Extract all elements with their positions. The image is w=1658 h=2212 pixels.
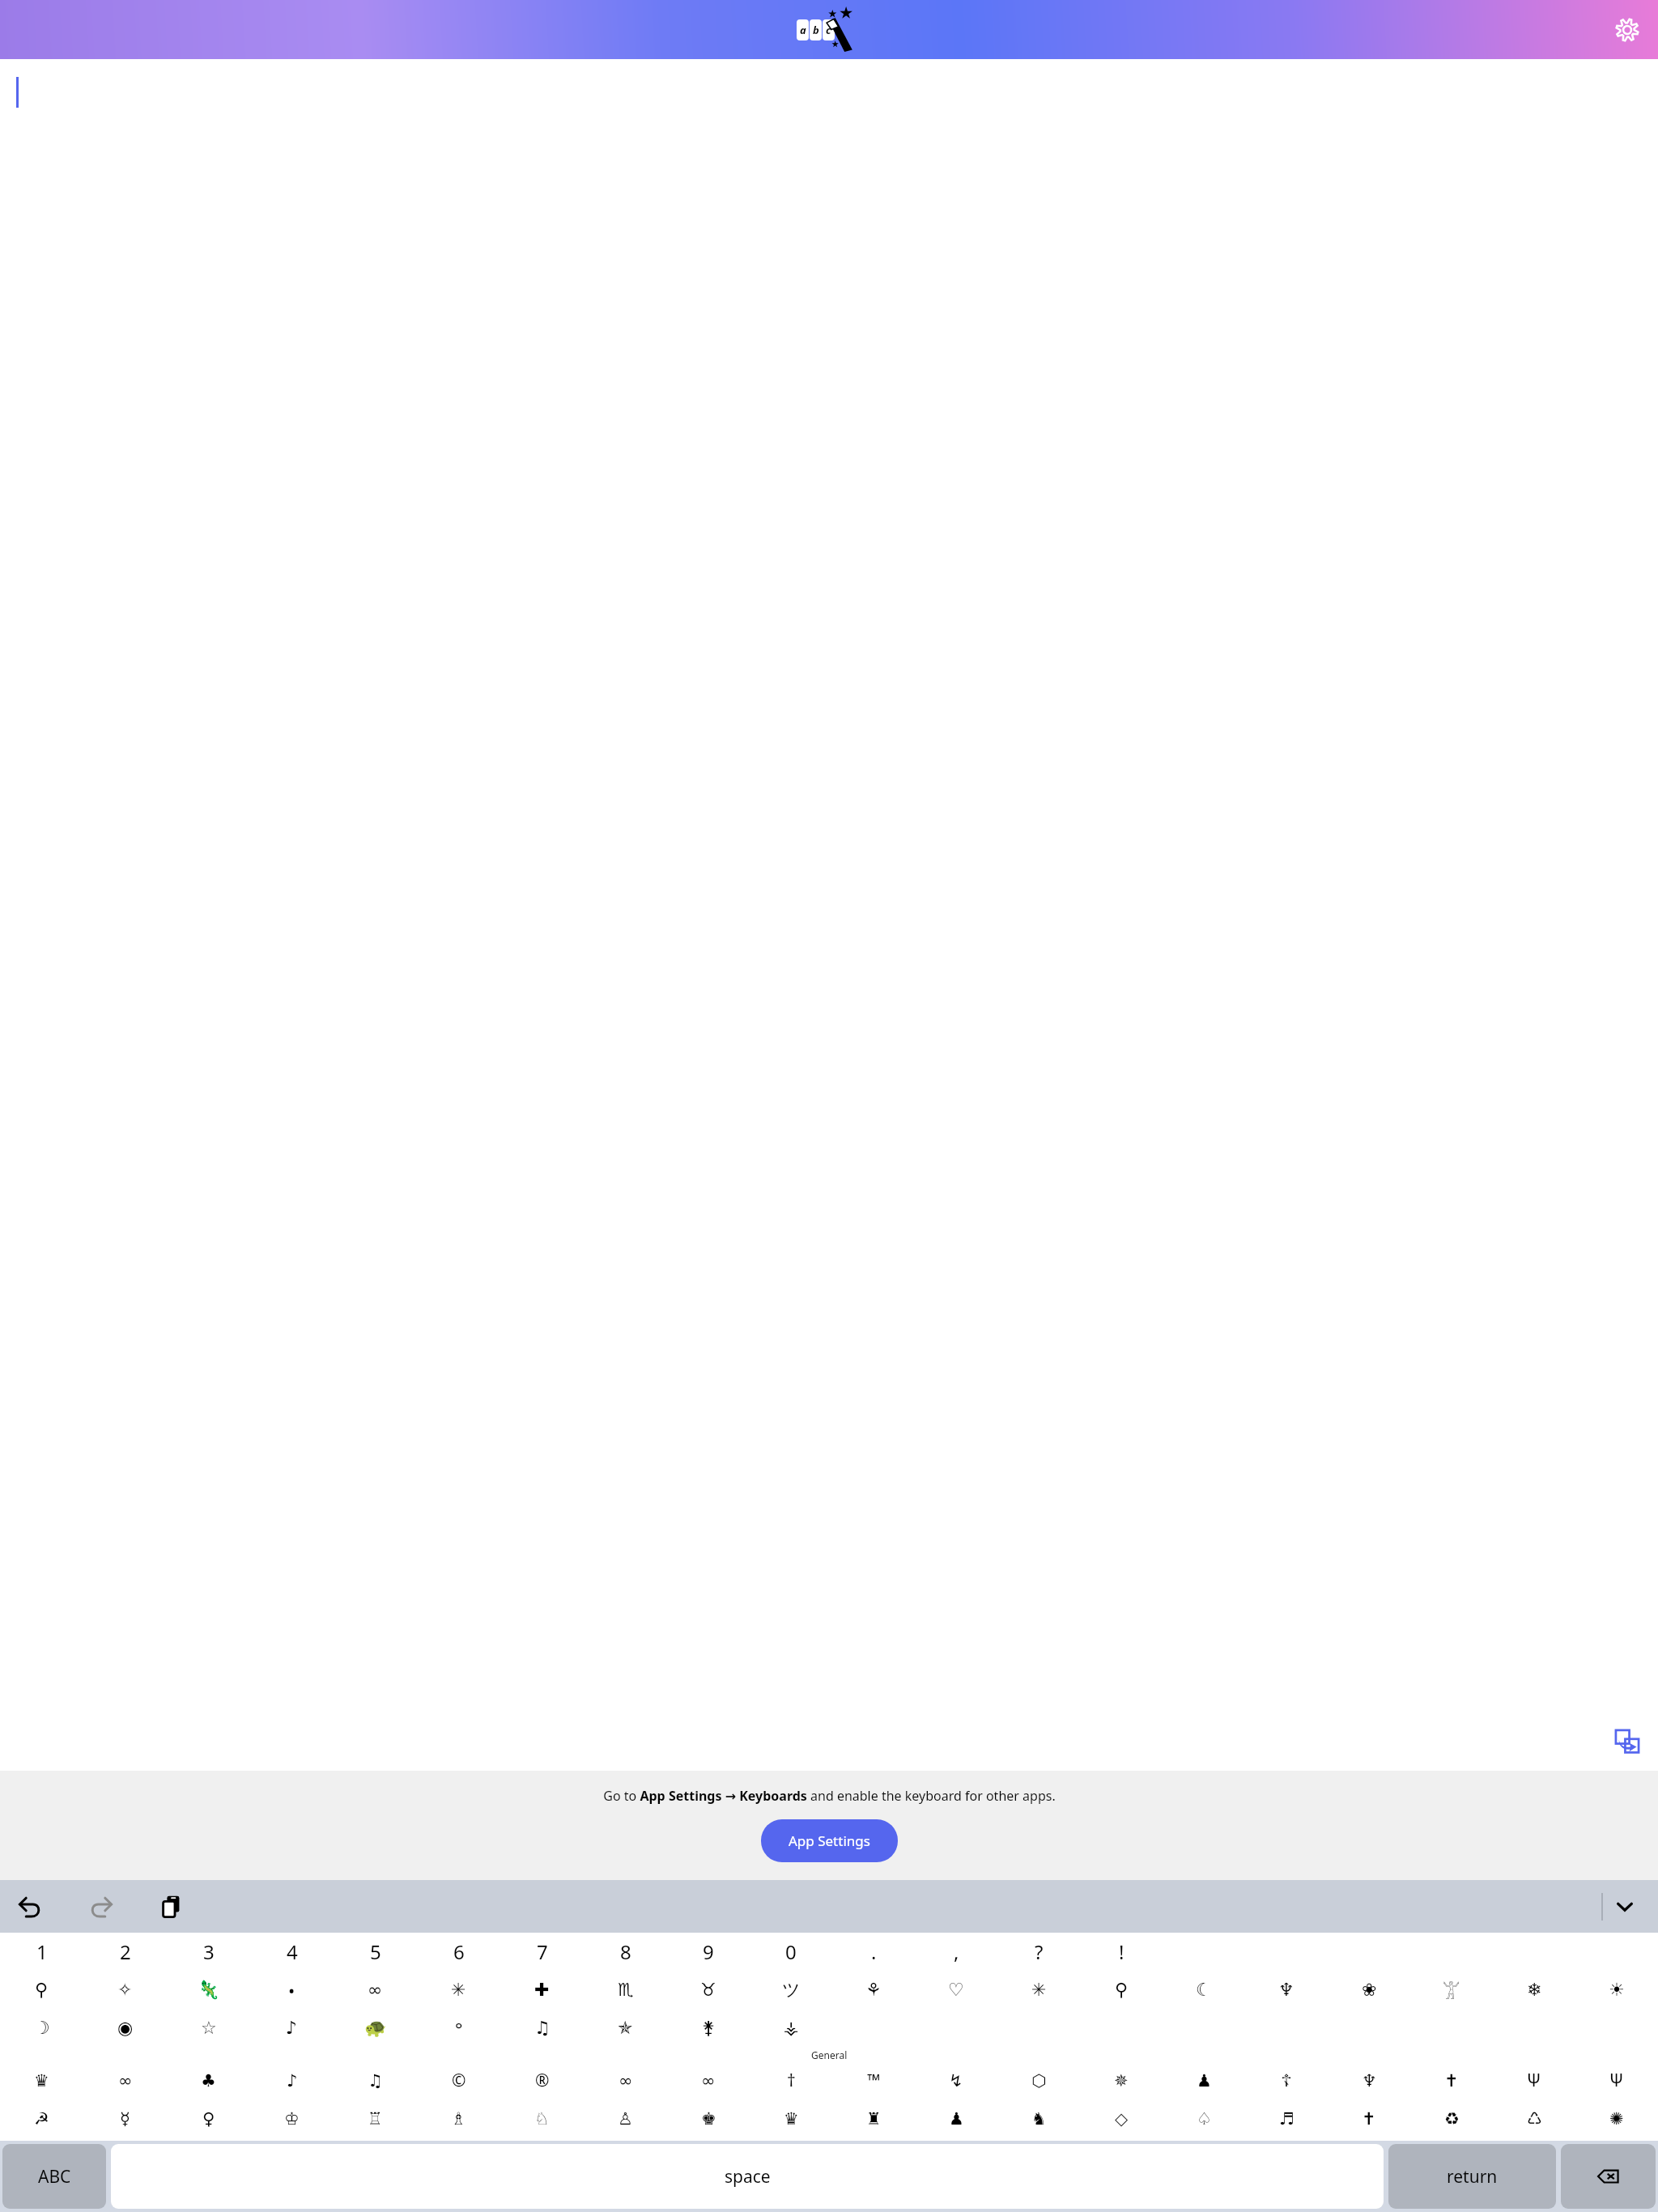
button[interactable]: return	[1388, 2144, 1556, 2209]
button[interactable]: 6	[417, 1933, 500, 1971]
button[interactable]: 🐢	[334, 2009, 417, 2047]
button[interactable]: 0	[750, 1933, 832, 1971]
button[interactable]: ✺	[1575, 2099, 1658, 2138]
button[interactable]: 1	[0, 1933, 83, 1971]
button[interactable]: ♛	[750, 2099, 832, 2138]
button[interactable]: ♡	[915, 1971, 997, 2009]
button[interactable]: ⚘	[832, 1971, 915, 2009]
button[interactable]: 9	[667, 1933, 750, 1971]
button[interactable]: 5	[334, 1933, 417, 1971]
button[interactable]: Hide keyboard	[1603, 1885, 1647, 1929]
button[interactable]: !	[1080, 1933, 1163, 1971]
button[interactable]: ♪	[250, 2009, 334, 2047]
button[interactable]: ∞	[83, 2061, 167, 2099]
button[interactable]: ✚	[500, 1971, 584, 2009]
button[interactable]: ∞	[334, 1971, 417, 2009]
button[interactable]: Redo	[79, 1885, 123, 1929]
button[interactable]: ♟	[1163, 2061, 1245, 2099]
button[interactable]: ✳	[417, 1971, 500, 2009]
button[interactable]: ♉	[667, 1971, 750, 2009]
button[interactable]: ☾	[1163, 1971, 1245, 2009]
button[interactable]: ♙	[584, 2099, 667, 2138]
button[interactable]: ♆	[1245, 1971, 1328, 2009]
button[interactable]: 8	[584, 1933, 667, 1971]
button[interactable]: ®	[500, 2061, 584, 2099]
button[interactable]: †	[750, 2061, 832, 2099]
button[interactable]: abc magic	[780, 7, 878, 53]
button[interactable]: .	[832, 1933, 915, 1971]
button[interactable]: ♜	[832, 2099, 915, 2138]
button[interactable]: 🦎	[167, 1971, 250, 2009]
button[interactable]: ♪	[250, 2061, 334, 2099]
button[interactable]: ♞	[997, 2099, 1080, 2138]
button[interactable]: ❀	[1328, 1971, 1410, 2009]
button[interactable]: ✝	[1410, 2061, 1493, 2099]
button[interactable]: Copy to app	[1609, 1724, 1645, 1759]
button[interactable]: ❄	[1493, 1971, 1575, 2009]
button[interactable]: Ψ	[1575, 2061, 1658, 2099]
button[interactable]: ♀	[167, 2099, 250, 2138]
button[interactable]: ⬡	[997, 2061, 1080, 2099]
button[interactable]: ♟	[915, 2099, 997, 2138]
button[interactable]: ☭	[0, 2099, 83, 2138]
staticText: 8	[620, 1938, 631, 1965]
button[interactable]: ♚	[667, 2099, 750, 2138]
button[interactable]: ♔	[250, 2099, 334, 2138]
button[interactable]: ◇	[1080, 2099, 1163, 2138]
button[interactable]: Copy	[151, 1885, 194, 1929]
button[interactable]: ABC	[2, 2144, 106, 2209]
button[interactable]: ☆	[167, 2009, 250, 2047]
button[interactable]: •	[250, 1971, 334, 2009]
button[interactable]: ♏	[584, 1971, 667, 2009]
button[interactable]: ✝	[1328, 2099, 1410, 2138]
button[interactable]: ✳	[997, 1971, 1080, 2009]
button[interactable]: ☽	[0, 2009, 83, 2047]
button[interactable]: ☿	[83, 2099, 167, 2138]
button[interactable]: ♻	[1410, 2099, 1493, 2138]
button[interactable]: space	[111, 2144, 1384, 2209]
button[interactable]: ⚵	[667, 2009, 750, 2047]
button[interactable]: ∞	[584, 2061, 667, 2099]
button[interactable]: ⚲	[1080, 1971, 1163, 2009]
button[interactable]: 2	[83, 1933, 167, 1971]
button[interactable]: ♫	[500, 2009, 584, 2047]
button[interactable]: ©	[417, 2061, 500, 2099]
button[interactable]: ♛	[0, 2061, 83, 2099]
button[interactable]: ♗	[417, 2099, 500, 2138]
button[interactable]: 4	[250, 1933, 334, 1971]
staticText: 4	[287, 1938, 298, 1965]
button[interactable]: ✧	[83, 1971, 167, 2009]
button[interactable]: ◉	[83, 2009, 167, 2047]
button[interactable]: ♆	[1328, 2061, 1410, 2099]
button[interactable]: °	[417, 2009, 500, 2047]
button[interactable]: ✵	[1080, 2061, 1163, 2099]
button[interactable]: 7	[500, 1933, 584, 1971]
button[interactable]: ♤	[1163, 2099, 1245, 2138]
button[interactable]: ♺	[1493, 2099, 1575, 2138]
button[interactable]: ♣	[167, 2061, 250, 2099]
button[interactable]: ?	[997, 1933, 1080, 1971]
button[interactable]: Backspace	[1561, 2144, 1656, 2209]
button[interactable]: App Settings	[761, 1819, 898, 1862]
button[interactable]: ♘	[500, 2099, 584, 2138]
button[interactable]: 𓀠	[1410, 1971, 1493, 2009]
button[interactable]: ⚲	[0, 1971, 83, 2009]
button[interactable]: ☦	[1245, 2061, 1328, 2099]
button[interactable]: ⚶	[750, 2009, 832, 2047]
button[interactable]: ,	[915, 1933, 997, 1971]
button[interactable]: ✯	[584, 2009, 667, 2047]
staticText: 1	[36, 1938, 48, 1965]
button[interactable]: Ψ	[1493, 2061, 1575, 2099]
button[interactable]: ツ	[750, 1971, 832, 2009]
button[interactable]: Settings	[1606, 9, 1648, 51]
button[interactable]: ↯	[915, 2061, 997, 2099]
button[interactable]: ™	[832, 2061, 915, 2099]
button[interactable]: ∞	[667, 2061, 750, 2099]
staticText: ∞	[619, 2071, 633, 2091]
button[interactable]: 3	[167, 1933, 250, 1971]
button[interactable]: ♬	[1245, 2099, 1328, 2138]
button[interactable]: Undo	[8, 1885, 52, 1929]
button[interactable]: ♫	[334, 2061, 417, 2099]
button[interactable]: ♖	[334, 2099, 417, 2138]
button[interactable]: ☀	[1575, 1971, 1658, 2009]
